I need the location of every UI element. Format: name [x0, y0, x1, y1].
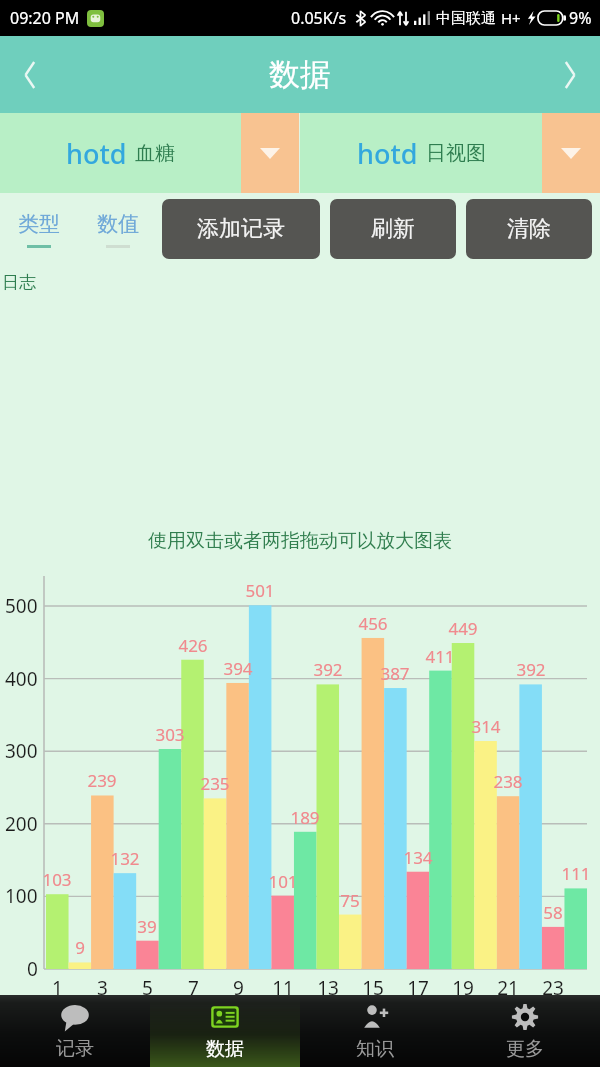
- staticText: 392: [516, 658, 546, 681]
- button[interactable]: 数据: [150, 995, 300, 1067]
- staticText: 300: [5, 738, 38, 764]
- staticText: 39: [137, 915, 157, 938]
- staticText: 15: [362, 975, 384, 1001]
- staticText: 400: [5, 666, 38, 692]
- staticText: 7: [188, 975, 199, 1001]
- staticText: 21: [497, 975, 519, 1001]
- staticText: 501: [245, 579, 275, 602]
- staticText: 456: [358, 612, 388, 635]
- staticText: 更多: [506, 1037, 544, 1061]
- staticText: 23: [542, 975, 564, 1001]
- staticText: 394: [223, 657, 253, 680]
- staticText: 134: [403, 846, 433, 869]
- button[interactable]: Open dropdown: [542, 113, 600, 193]
- staticText: hotd: [66, 135, 127, 172]
- staticText: 238: [493, 770, 523, 793]
- staticText: 09:20 PM: [10, 7, 80, 29]
- staticText: 9: [75, 936, 85, 959]
- staticText: 数据: [269, 55, 331, 94]
- button[interactable]: 刷新: [330, 199, 456, 259]
- staticText: 449: [448, 617, 478, 640]
- staticText: 387: [380, 662, 410, 685]
- button[interactable]: Open dropdown: [241, 113, 299, 193]
- staticText: 使用双击或者两指拖动可以放大图表: [148, 529, 452, 553]
- staticText: 日志: [2, 272, 36, 293]
- staticText: 303: [155, 723, 185, 746]
- button[interactable]: 记录: [0, 995, 150, 1067]
- button[interactable]: 添加记录: [162, 199, 320, 259]
- staticText: 19: [452, 975, 474, 1001]
- staticText: 9%: [569, 7, 592, 29]
- staticText: 500: [5, 593, 38, 619]
- staticText: 添加记录: [197, 215, 285, 243]
- staticText: 100: [5, 883, 38, 909]
- button[interactable]: 知识: [300, 995, 450, 1067]
- button[interactable]: 清除: [466, 199, 592, 259]
- staticText: 数据: [206, 1037, 244, 1061]
- staticText: 9: [233, 975, 244, 1001]
- button[interactable]: 数值: [78, 198, 158, 260]
- staticText: 5: [142, 975, 153, 1001]
- button[interactable]: 类型: [0, 198, 78, 260]
- staticText: 1: [52, 975, 63, 1001]
- staticText: hotd: [357, 135, 418, 172]
- staticText: 200: [5, 811, 38, 837]
- staticText: 0: [27, 956, 38, 982]
- staticText: 314: [471, 715, 501, 738]
- staticText: 记录: [56, 1037, 94, 1061]
- button[interactable]: 更多: [450, 995, 600, 1067]
- staticText: 13: [317, 975, 339, 1001]
- staticText: 132: [110, 847, 140, 870]
- staticText: 189: [290, 806, 320, 829]
- staticText: 11: [272, 975, 294, 1001]
- staticText: 0.05K/s: [291, 7, 347, 29]
- button[interactable]: hotd: [300, 113, 542, 193]
- staticText: 清除: [507, 215, 551, 243]
- staticText: 知识: [356, 1037, 394, 1061]
- button[interactable]: [0, 299, 600, 995]
- staticText: 血糖: [135, 141, 175, 166]
- staticText: 111: [561, 862, 591, 885]
- staticText: 411: [425, 645, 455, 668]
- staticText: H+: [501, 8, 521, 28]
- staticText: 392: [313, 658, 343, 681]
- staticText: 235: [200, 772, 230, 795]
- staticText: 3: [97, 975, 108, 1001]
- button[interactable]: Previous: [0, 45, 60, 105]
- staticText: 类型: [18, 211, 60, 237]
- staticText: 刷新: [371, 215, 415, 243]
- staticText: 日视图: [426, 141, 486, 166]
- staticText: 103: [42, 868, 72, 891]
- staticText: 中国联通: [436, 9, 496, 28]
- staticText: 17: [407, 975, 429, 1001]
- button[interactable]: Next: [540, 45, 600, 105]
- staticText: 426: [178, 634, 208, 657]
- staticText: 数值: [97, 211, 139, 237]
- staticText: 101: [268, 870, 298, 893]
- staticText: 75: [340, 889, 360, 912]
- staticText: 58: [543, 901, 563, 924]
- button[interactable]: hotd: [0, 113, 241, 193]
- staticText: 239: [87, 769, 117, 792]
